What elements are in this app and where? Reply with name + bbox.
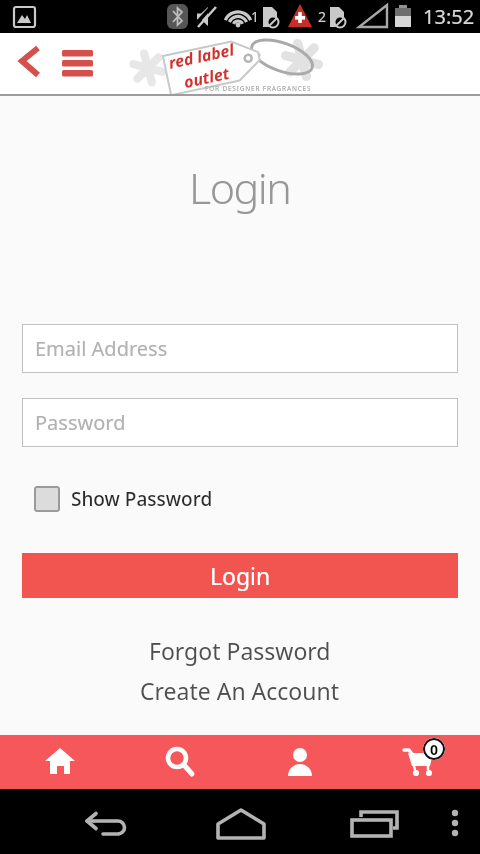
button[interactable]: Create An Account <box>140 675 340 706</box>
staticText: 0 <box>430 740 439 759</box>
staticText: Show Password <box>71 486 213 512</box>
staticText: red label <box>166 38 236 74</box>
button[interactable] <box>160 789 320 854</box>
button[interactable]: Forgot Password <box>149 635 331 666</box>
staticText: 2 <box>318 7 327 26</box>
staticText: 1 <box>251 7 260 26</box>
button[interactable] <box>320 789 480 854</box>
button[interactable] <box>0 735 120 789</box>
button[interactable]: Login <box>22 553 458 598</box>
staticText: outlet <box>182 62 231 91</box>
button[interactable]: red label <box>130 33 350 96</box>
staticText: Password <box>35 409 126 436</box>
button[interactable] <box>12 41 48 87</box>
staticText: Login <box>210 560 271 591</box>
button[interactable]: Show Password <box>34 486 480 512</box>
button[interactable]: Password <box>22 398 458 447</box>
staticText: FOR DESIGNER FRAGRANCES <box>205 84 312 93</box>
button[interactable]: Email Address <box>22 324 458 373</box>
button[interactable] <box>0 789 160 854</box>
staticText: Login <box>189 158 291 217</box>
button[interactable] <box>240 735 360 789</box>
button[interactable] <box>56 41 98 87</box>
button[interactable]: 0 <box>360 735 480 789</box>
button[interactable] <box>120 735 240 789</box>
staticText: 13:52 <box>423 3 475 30</box>
staticText: Email Address <box>35 335 168 362</box>
